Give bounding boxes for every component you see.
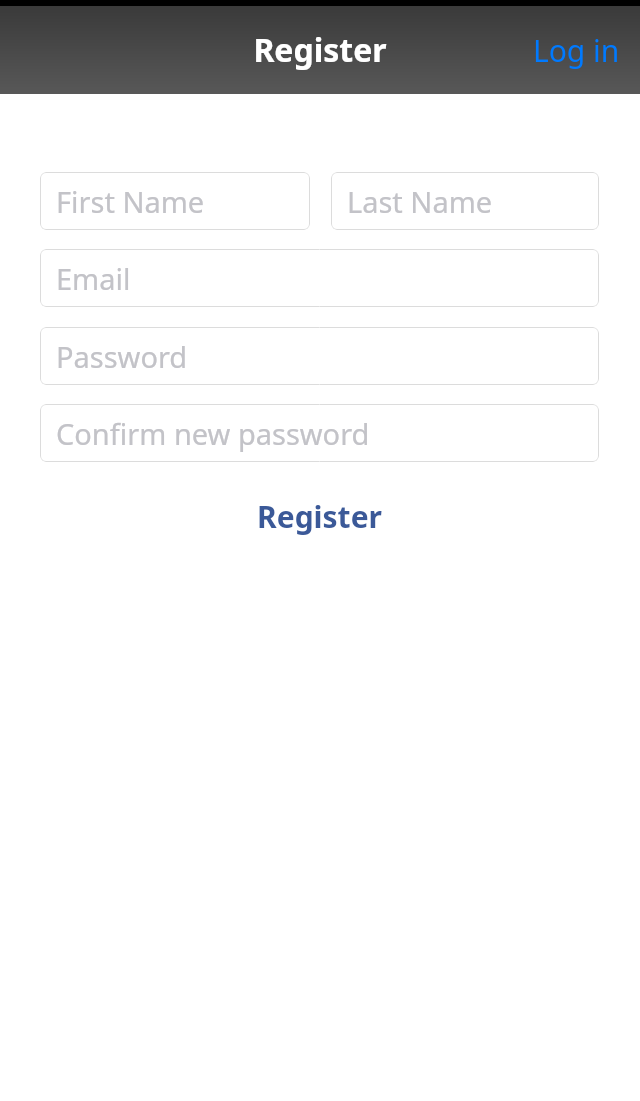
button[interactable]: Email: [40, 249, 599, 307]
staticText: Register: [257, 496, 382, 537]
button[interactable]: Confirm new password: [40, 404, 599, 462]
button[interactable]: Register: [40, 484, 599, 549]
button[interactable]: Log in: [513, 20, 640, 81]
staticText: Password: [56, 337, 188, 376]
button[interactable]: Last Name: [331, 172, 599, 230]
button[interactable]: Password: [40, 327, 599, 385]
staticText: First Name: [56, 182, 205, 221]
staticText: Confirm new password: [56, 414, 370, 453]
staticText: Register: [253, 28, 387, 72]
button[interactable]: First Name: [40, 172, 310, 230]
staticText: Email: [56, 259, 131, 298]
staticText: Log in: [533, 30, 620, 71]
staticText: Last Name: [347, 182, 493, 221]
